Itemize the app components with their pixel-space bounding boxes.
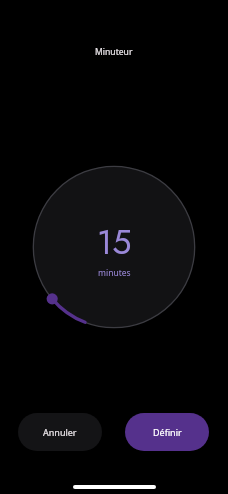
- staticText: Minuteur: [95, 46, 133, 58]
- button[interactable]: Définir: [125, 413, 209, 451]
- staticText: minutes: [98, 267, 131, 279]
- staticText: 15: [97, 218, 132, 267]
- staticText: Annuler: [43, 426, 77, 438]
- button[interactable]: Annuler: [18, 413, 102, 451]
- staticText: Définir: [153, 426, 182, 438]
